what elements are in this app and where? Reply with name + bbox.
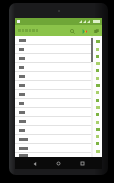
button[interactable]: Home <box>54 159 63 168</box>
button[interactable]: More options <box>92 27 100 35</box>
button[interactable] <box>15 36 91 45</box>
button[interactable] <box>15 81 91 90</box>
button[interactable] <box>15 135 91 144</box>
button[interactable] <box>15 126 91 135</box>
button[interactable] <box>15 108 91 117</box>
button[interactable] <box>15 63 91 72</box>
button[interactable]: Search <box>68 27 76 35</box>
button[interactable] <box>15 153 91 157</box>
button[interactable]: Back <box>30 159 39 168</box>
button[interactable] <box>15 54 91 63</box>
button[interactable] <box>15 117 91 126</box>
button[interactable]: Google Play <box>80 27 88 35</box>
button[interactable] <box>15 99 91 108</box>
button[interactable] <box>15 45 91 54</box>
button[interactable]: Recents <box>78 159 87 168</box>
button[interactable]: Alphabet index <box>93 36 102 157</box>
button[interactable] <box>15 72 91 81</box>
button[interactable] <box>15 90 91 99</box>
button[interactable] <box>15 144 91 153</box>
